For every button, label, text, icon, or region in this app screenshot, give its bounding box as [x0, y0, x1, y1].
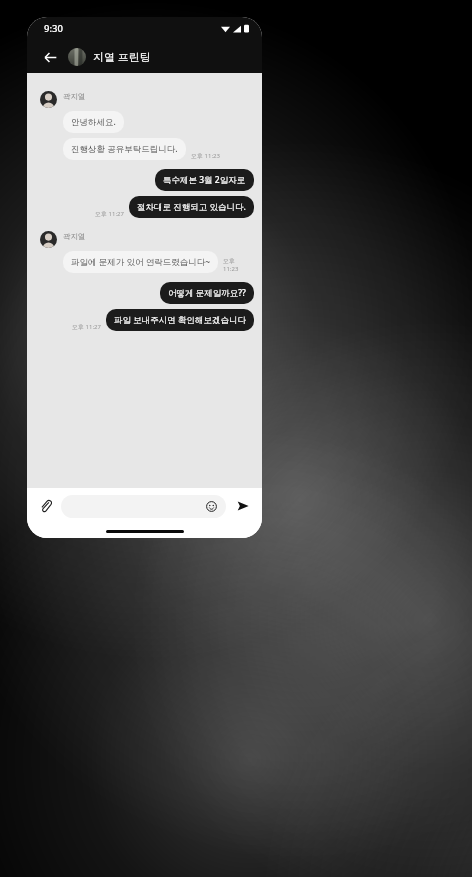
- staticText: 오후 11:23: [191, 152, 220, 160]
- button[interactable]: 곽지열 avatar: [40, 91, 57, 108]
- staticText: 곽지열: [63, 92, 86, 101]
- button[interactable]: Emoji: [204, 499, 219, 514]
- button[interactable]: 진행상황 공유부탁드립니다.: [63, 138, 186, 160]
- button[interactable]: 곽지열 avatar: [40, 231, 57, 248]
- staticText: 어떻게 문제일까요??: [168, 287, 246, 299]
- button[interactable]: Profile photo: [68, 48, 86, 66]
- staticText: 절차대로 진행되고 있습니다.: [137, 201, 246, 213]
- staticText: 오후 11:27: [95, 210, 124, 218]
- staticText: 9:30: [44, 22, 63, 35]
- staticText: 오후 11:23: [223, 257, 250, 273]
- staticText: 곽지열: [63, 232, 86, 241]
- button[interactable]: 지열 프린팅: [93, 49, 151, 64]
- button[interactable]: 안녕하세요.: [63, 111, 124, 133]
- button[interactable]: 절차대로 진행되고 있습니다.: [129, 196, 254, 218]
- staticText: 오후 11:27: [72, 323, 101, 331]
- staticText: 파일 보내주시면 확인해보겠습니다: [114, 314, 246, 326]
- button[interactable]: Back: [39, 46, 61, 68]
- button[interactable]: 파일에 문제가 있어 연락드렸습니다~: [63, 251, 218, 273]
- button[interactable]: Send: [233, 496, 253, 516]
- staticText: 안녕하세요.: [71, 116, 116, 128]
- staticText: 진행상황 공유부탁드립니다.: [71, 143, 178, 155]
- button[interactable]: Emoji: [61, 495, 226, 518]
- button[interactable]: 파일 보내주시면 확인해보겠습니다: [106, 309, 254, 331]
- staticText: 파일에 문제가 있어 연락드렸습니다~: [71, 256, 210, 268]
- button[interactable]: 특수제본 3월 2일자로: [155, 169, 254, 191]
- button[interactable]: Attach file: [36, 496, 56, 516]
- staticText: 특수제본 3월 2일자로: [163, 174, 246, 186]
- button[interactable]: 어떻게 문제일까요??: [160, 282, 254, 304]
